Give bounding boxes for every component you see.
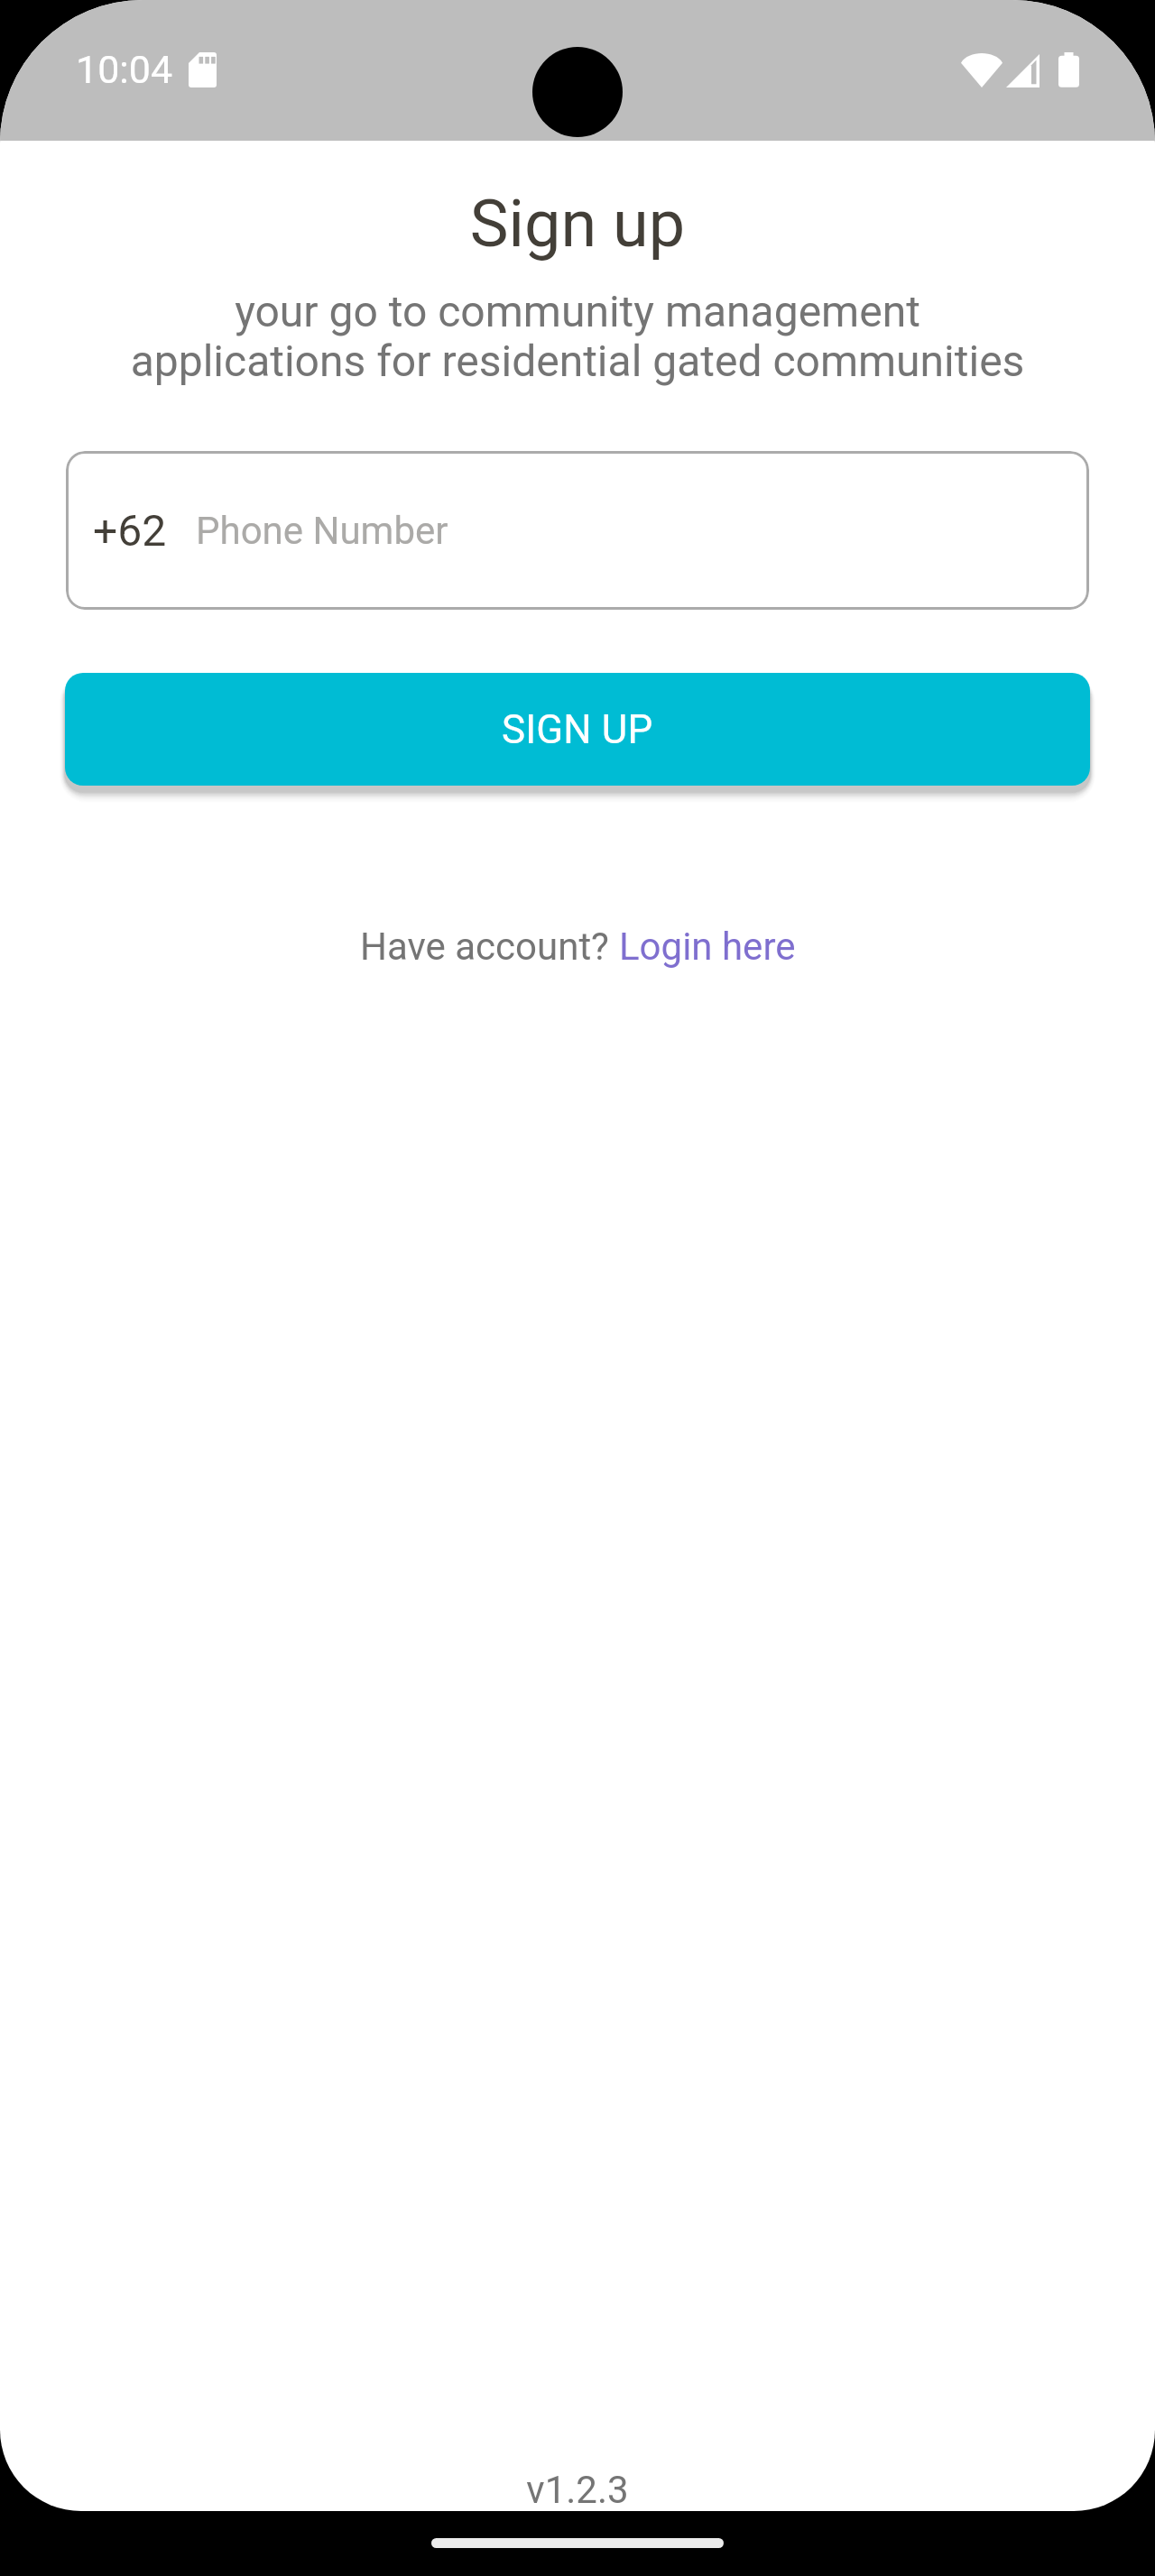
staticText: SIGN UP bbox=[502, 706, 653, 753]
button[interactable]: SIGN UP bbox=[65, 673, 1090, 786]
other: Battery bbox=[1058, 52, 1079, 87]
button[interactable]: Login here bbox=[619, 925, 796, 969]
button[interactable]: +62 bbox=[66, 451, 1089, 610]
staticText: your go to community management applicat… bbox=[0, 286, 1155, 386]
other: Mobile signal bbox=[1006, 54, 1039, 87]
staticText: v1.2.3 bbox=[0, 2468, 1155, 2511]
staticText: Have account? bbox=[360, 925, 619, 969]
staticText: Phone Number bbox=[196, 509, 448, 553]
staticText: +62 bbox=[93, 505, 167, 556]
other: Wi-Fi signal bbox=[961, 53, 1003, 87]
staticText: 10:04 bbox=[76, 47, 173, 92]
staticText: Sign up bbox=[0, 186, 1155, 262]
other: SD card bbox=[189, 52, 217, 87]
